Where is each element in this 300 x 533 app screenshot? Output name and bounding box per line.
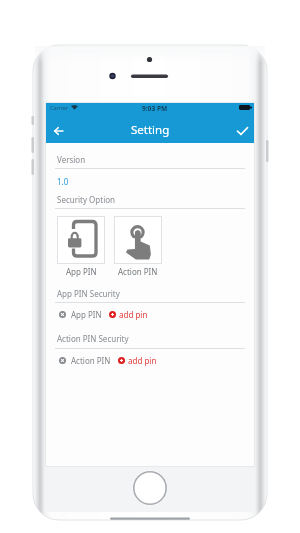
staticText: App PIN bbox=[66, 266, 97, 277]
button[interactable]: Action PIN bbox=[114, 216, 162, 264]
staticText: add pin bbox=[119, 309, 148, 320]
button[interactable]: Remove App PIN bbox=[55, 307, 69, 321]
staticText: Action PIN bbox=[71, 355, 111, 366]
staticText: Security Option bbox=[57, 194, 116, 205]
staticText: Action PIN bbox=[118, 266, 158, 277]
staticText: Action PIN Security bbox=[57, 333, 129, 344]
staticText: add pin bbox=[128, 355, 157, 366]
staticText: 1.0 bbox=[57, 176, 69, 187]
button[interactable]: add pin bbox=[115, 353, 157, 367]
button[interactable]: App PIN bbox=[57, 216, 105, 264]
staticText: App PIN Security bbox=[57, 288, 120, 299]
button[interactable]: add pin bbox=[106, 307, 148, 321]
staticText: 9:03 PM bbox=[142, 104, 168, 113]
staticText: App PIN bbox=[71, 309, 102, 320]
button[interactable]: Remove Action PIN bbox=[55, 353, 69, 367]
button[interactable]: Confirm bbox=[232, 121, 252, 141]
staticText: Setting bbox=[131, 122, 170, 138]
button[interactable]: Back bbox=[48, 121, 68, 141]
staticText: Carrier bbox=[50, 104, 69, 112]
staticText: Version bbox=[57, 154, 86, 165]
